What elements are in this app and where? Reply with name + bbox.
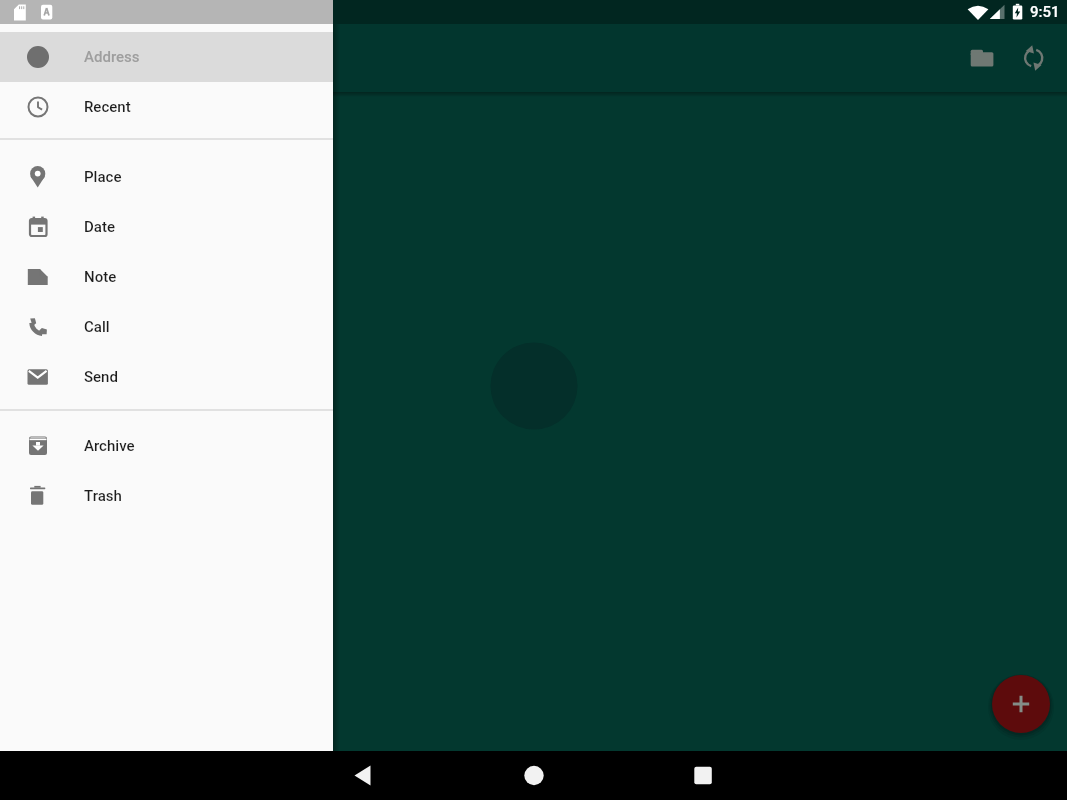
button[interactable]: Date [0,202,333,252]
staticText: Trash [84,487,122,505]
button[interactable]: Call [0,302,333,352]
staticText: Address [84,48,140,66]
button[interactable]: Send [0,352,333,402]
staticText: Recent [84,98,131,116]
button[interactable]: Place [0,152,333,202]
button[interactable] [510,751,558,800]
staticText: Send [84,368,118,386]
button[interactable] [992,675,1050,733]
staticText: Note [84,268,117,286]
staticText: Date [84,218,115,236]
button[interactable]: Address [0,32,333,82]
button[interactable]: Archive [0,421,333,471]
button[interactable] [1009,34,1057,82]
button[interactable]: Recent [0,82,333,132]
button[interactable] [679,751,727,800]
staticText: 9:51 [1030,3,1060,21]
button[interactable] [339,751,387,800]
button[interactable] [960,34,1008,82]
staticText: Call [84,318,110,336]
button[interactable]: Note [0,252,333,302]
staticText: Archive [84,437,135,455]
staticText: Place [84,168,122,186]
button[interactable]: Trash [0,471,333,521]
